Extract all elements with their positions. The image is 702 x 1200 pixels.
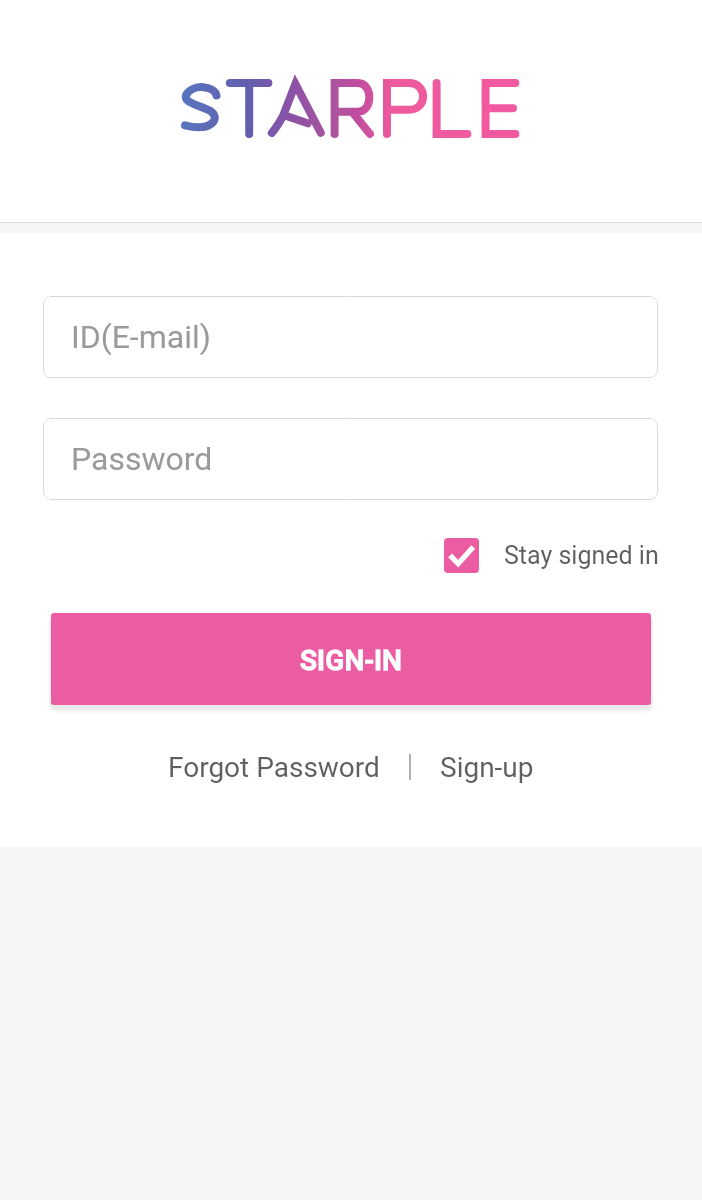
staticText: ID(E-mail) — [71, 318, 211, 356]
staticText: Forgot Password — [168, 751, 380, 783]
staticText: Sign-up — [440, 751, 534, 783]
staticText: SIGN-IN — [300, 644, 403, 677]
button[interactable]: Password — [43, 418, 658, 500]
button[interactable]: Forgot Password — [162, 745, 386, 789]
button[interactable]: Sign-up — [434, 745, 540, 789]
button[interactable]: Stay signed in — [444, 533, 659, 577]
button[interactable]: ID(E-mail) — [43, 296, 658, 378]
button[interactable]: SIGN-IN — [51, 613, 651, 705]
staticText: Password — [71, 440, 213, 478]
other: STARPLE — [182, 79, 520, 138]
staticText: Stay signed in — [504, 541, 659, 570]
